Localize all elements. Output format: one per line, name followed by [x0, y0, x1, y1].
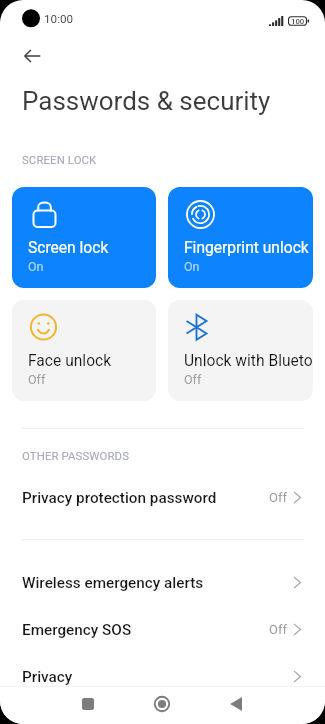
- staticText: On: [184, 259, 200, 274]
- button[interactable]: Back: [199, 685, 273, 723]
- button[interactable]: Unlock with Bluetooth: [168, 300, 313, 401]
- staticText: Face unlock: [28, 352, 112, 370]
- staticText: Wireless emergency alerts: [22, 574, 294, 592]
- staticText: Emergency SOS: [22, 621, 269, 639]
- staticText: Fingerprint unlock: [184, 239, 309, 257]
- button[interactable]: Home: [125, 685, 199, 723]
- button[interactable]: Recent apps: [51, 685, 125, 723]
- staticText: Unlock with Bluetooth: [184, 352, 313, 370]
- staticText: Off: [184, 372, 202, 387]
- staticText: Passwords & security: [22, 86, 271, 116]
- staticText: 10:00: [44, 12, 74, 26]
- staticText: OTHER PASSWORDS: [22, 449, 130, 462]
- staticText: Off: [28, 372, 46, 387]
- button[interactable]: Wireless emergency alerts: [0, 559, 325, 606]
- button[interactable]: Privacy: [0, 653, 325, 700]
- button[interactable]: Fingerprint unlock: [168, 187, 313, 288]
- button[interactable]: Privacy protection password: [0, 474, 325, 521]
- button[interactable]: Face unlock: [12, 300, 156, 401]
- staticText: Screen lock: [28, 239, 109, 257]
- staticText: Off: [269, 622, 287, 637]
- button[interactable]: Emergency SOS: [0, 606, 325, 653]
- staticText: On: [28, 259, 44, 274]
- button[interactable]: Back: [14, 38, 50, 74]
- button[interactable]: Screen lock: [12, 187, 156, 288]
- staticText: SCREEN LOCK: [22, 153, 97, 166]
- staticText: Privacy protection password: [22, 489, 269, 507]
- staticText: 100: [291, 17, 305, 26]
- staticText: Off: [269, 490, 287, 505]
- staticText: Privacy: [22, 668, 294, 686]
